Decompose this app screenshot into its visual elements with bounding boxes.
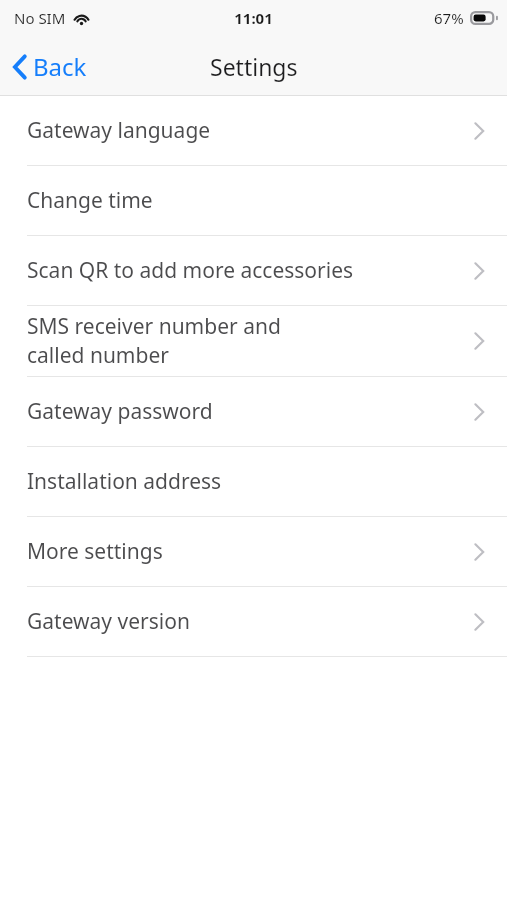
staticText: 67% [434,8,464,28]
staticText: Settings [210,51,298,82]
staticText: Gateway language [27,116,211,145]
staticText: Installation address [27,467,222,496]
staticText: Gateway version [27,607,190,636]
button[interactable]: Back [0,42,101,91]
button[interactable]: Gateway password [0,377,507,446]
button[interactable]: Scan QR to add more accessories [0,236,507,305]
staticText: More settings [27,537,163,566]
button[interactable]: Gateway version [0,587,507,656]
button[interactable]: More settings [0,517,507,586]
staticText: called number [27,341,169,370]
staticText: Scan QR to add more accessories [27,256,354,285]
button[interactable]: Installation address [0,447,507,516]
staticText: No SIM [14,8,66,28]
staticText: Back [33,50,87,83]
other: Back [12,53,28,81]
button[interactable]: Gateway language [0,96,507,165]
staticText: Change time [27,186,153,215]
button[interactable]: SMS receiver number and [0,306,507,376]
staticText: 11:01 [234,8,273,28]
staticText: Gateway password [27,397,213,426]
staticText: SMS receiver number and [27,312,281,341]
button[interactable]: Change time [0,166,507,235]
